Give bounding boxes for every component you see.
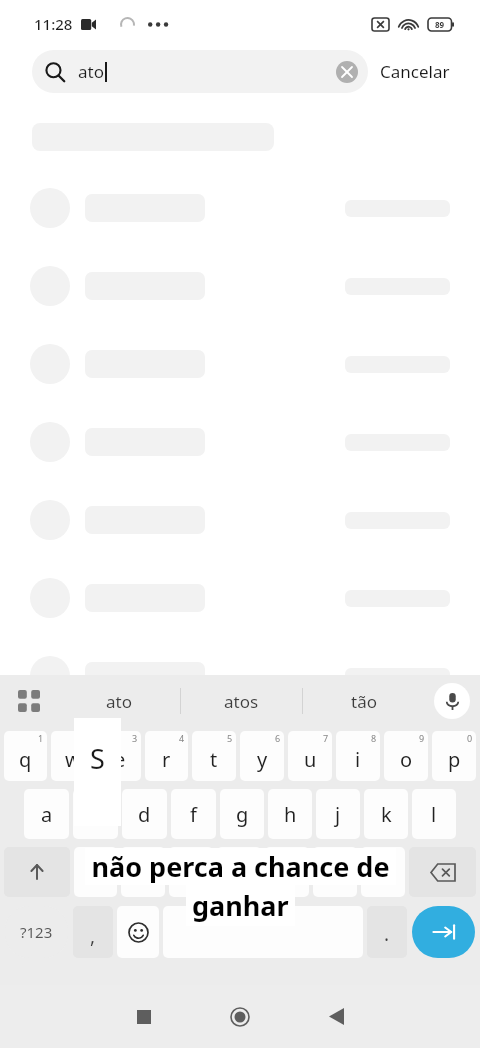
button[interactable]: k [364,789,408,839]
button[interactable]: q [4,731,47,781]
button[interactable]: Início [192,985,288,1048]
staticText: q [19,746,32,773]
button[interactable]: j [316,789,360,839]
button[interactable]: Cancelar [380,60,450,83]
button[interactable]: l [412,789,456,839]
button[interactable]: Recentes [96,985,192,1048]
staticText: atos [224,690,259,713]
staticText: z [91,859,101,886]
staticText: t [210,746,218,773]
staticText: , [90,923,96,949]
staticText: 1 [38,732,44,744]
staticText: u [304,746,317,773]
staticText: 3 [132,732,138,744]
button[interactable]: g [220,789,264,839]
staticText: v [234,859,245,886]
button[interactable]: y [240,731,284,781]
button[interactable]: Menu do teclado [0,675,58,727]
button[interactable]: h [268,789,312,839]
staticText: c [186,859,196,886]
staticText: não perca a chance de [91,848,390,885]
staticText: tão [351,690,377,713]
button[interactable]: Espaço [163,906,363,958]
button[interactable]: Voltar [288,985,384,1048]
staticText: a [41,801,53,828]
button[interactable]: atos [181,675,302,727]
staticText: h [284,801,297,828]
staticText: p [448,746,461,773]
staticText: y [257,746,268,773]
button[interactable]: Shift [4,847,70,897]
button[interactable]: x [121,847,165,897]
staticText: 4 [179,732,185,744]
staticText: b [281,859,294,886]
staticText: k [381,801,392,828]
button[interactable]: . [367,906,407,958]
button[interactable]: Emoji [117,906,159,958]
button[interactable]: d [122,789,167,839]
button[interactable]: p [432,731,476,781]
staticText: 0 [467,732,473,744]
staticText: n [329,859,342,886]
staticText: j [335,801,341,828]
staticText: ato [78,60,104,83]
button[interactable]: a [24,789,69,839]
button[interactable]: tão [303,675,424,727]
staticText: i [355,746,361,773]
staticText: g [236,801,249,828]
staticText: 5 [227,732,233,744]
staticText: r [162,746,171,773]
staticText: 6 [275,732,281,744]
staticText: 7 [323,732,329,744]
button[interactable]: m [361,847,405,897]
staticText: ato [106,690,132,713]
staticText: . [384,921,390,947]
staticText: S [90,740,105,777]
staticText: 89 [435,19,445,30]
button[interactable]: ato [32,50,368,93]
button[interactable]: r [145,731,188,781]
staticText: 11:28 [34,14,73,34]
staticText: x [138,859,149,886]
staticText: 9 [419,732,425,744]
staticText: ganhar [192,887,289,924]
staticText: w [65,746,81,773]
button[interactable]: Apagar [409,847,476,897]
staticText: m [374,859,393,886]
button[interactable]: Entrada de voz [424,675,480,727]
button[interactable]: ?123 [5,906,68,958]
button[interactable]: n [313,847,357,897]
staticText: f [190,801,197,828]
staticText: ?123 [20,922,53,942]
button[interactable]: t [192,731,236,781]
button[interactable]: Avançar [412,906,475,958]
button[interactable]: , [73,906,113,958]
button[interactable]: b [265,847,309,897]
staticText: l [431,801,437,828]
button[interactable]: w [51,731,94,781]
staticText: e [114,746,126,773]
button[interactable]: o [384,731,428,781]
button[interactable]: c [169,847,213,897]
staticText: o [400,746,413,773]
staticText: Cancelar [380,60,450,83]
button[interactable]: z [74,847,117,897]
button[interactable]: i [336,731,380,781]
button[interactable]: ato [58,675,180,727]
button[interactable]: u [288,731,332,781]
button[interactable]: e [98,731,141,781]
staticText: d [138,801,151,828]
button[interactable]: v [217,847,261,897]
staticText: 8 [371,732,377,744]
button[interactable]: Limpar [336,61,358,83]
button[interactable]: f [171,789,216,839]
